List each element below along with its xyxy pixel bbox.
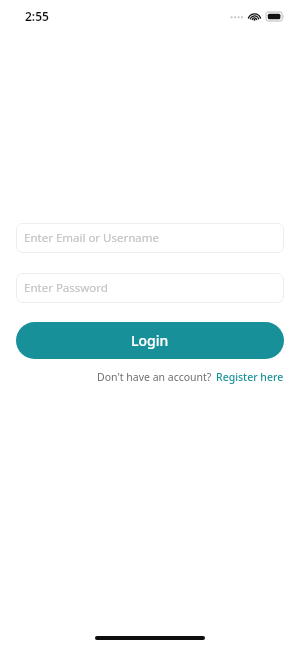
button[interactable]: Enter Password	[16, 273, 284, 303]
staticText: Enter Email or Username	[24, 230, 160, 246]
button[interactable]: Register here	[216, 370, 284, 384]
staticText: Login	[131, 331, 169, 350]
button[interactable]: Enter Email or Username	[16, 223, 284, 253]
staticText: Register here	[216, 370, 284, 384]
button[interactable]: Login	[16, 322, 284, 359]
staticText: Enter Password	[24, 280, 108, 296]
staticText: Don't have an account?	[97, 370, 212, 384]
staticText: 2:55	[25, 8, 49, 24]
